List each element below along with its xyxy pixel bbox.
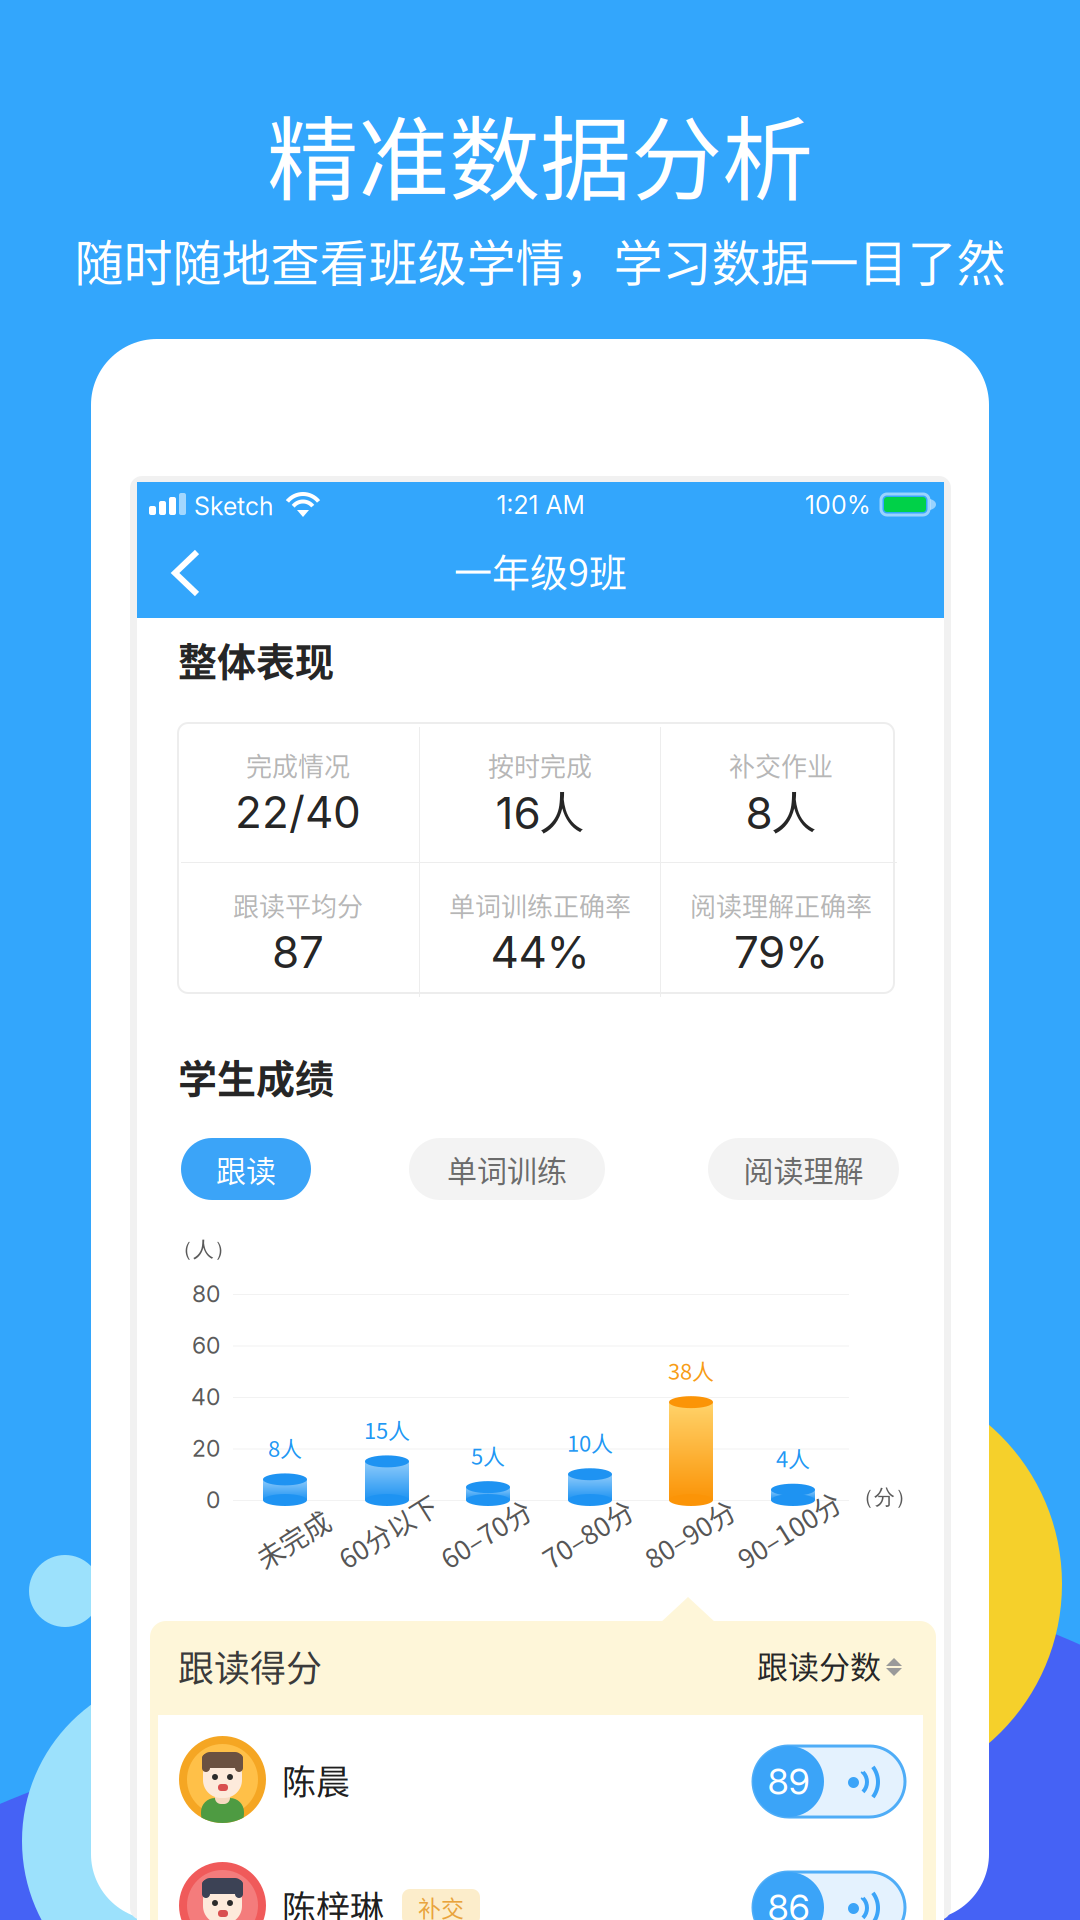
staticText: 80–90分: [657, 1538, 758, 1577]
button[interactable]: 跟读分数: [150, 1597, 381, 1645]
staticText: 按时完成: [488, 746, 592, 784]
staticText: 60分以下: [351, 1538, 462, 1577]
staticText: 0: [206, 1486, 220, 1514]
staticText: 跟读平均分: [233, 886, 363, 924]
staticText: 跟读: [216, 1147, 276, 1191]
staticText: 跟读得分: [178, 1640, 322, 1692]
staticText: 40: [191, 1383, 220, 1411]
staticText: 学生成绩: [178, 1048, 334, 1104]
staticText: 单词训练正确率: [449, 886, 631, 924]
staticText: 未完成: [269, 1538, 350, 1577]
staticText: 陈梓琳: [282, 1881, 384, 1920]
staticText: 22/40: [235, 785, 361, 839]
staticText: 补交: [418, 1890, 464, 1920]
staticText: 87: [272, 925, 324, 979]
staticText: 38人: [668, 1354, 714, 1386]
staticText: 阅读理解: [743, 1147, 863, 1191]
staticText: 100%: [805, 490, 871, 520]
staticText: 15人: [364, 1413, 410, 1445]
staticText: 1:21 AM: [496, 490, 584, 520]
staticText: 80: [192, 1280, 220, 1308]
staticText: 8人: [745, 784, 816, 840]
staticText: 精准数据分析: [267, 87, 813, 219]
button[interactable]: 跟读: [181, 1138, 311, 1200]
staticText: 完成情况: [246, 746, 350, 784]
staticText: 补交作业: [729, 746, 833, 784]
staticText: 20: [192, 1435, 220, 1462]
staticText: （分）: [853, 1484, 916, 1510]
button[interactable]: Back: [137, 528, 213, 594]
staticText: 89: [767, 1760, 809, 1803]
staticText: （人）: [172, 1236, 235, 1262]
staticText: Sketch: [194, 491, 273, 521]
staticText: 随时随地查看班级学情，学习数据一目了然: [74, 224, 1005, 295]
staticText: 90–100分: [750, 1538, 866, 1577]
staticText: 跟读分数: [757, 1643, 881, 1687]
staticText: 阅读理解正确率: [690, 886, 872, 924]
staticText: 5人: [471, 1439, 505, 1471]
staticText: 10人: [567, 1426, 613, 1458]
staticText: 单词训练: [447, 1147, 567, 1191]
staticText: 陈晨: [282, 1755, 350, 1804]
button[interactable]: 陈梓琳: [150, 1597, 915, 1723]
staticText: 4人: [776, 1442, 810, 1474]
staticText: 16人: [495, 784, 584, 840]
staticText: 79%: [734, 925, 828, 979]
staticText: 60–70分: [453, 1538, 554, 1577]
staticText: 8人: [268, 1431, 302, 1463]
staticText: 一年级9班: [454, 542, 627, 597]
staticText: 60: [192, 1332, 220, 1359]
staticText: 整体表现: [178, 631, 334, 687]
button[interactable]: 单词训练: [181, 1138, 377, 1200]
button[interactable]: 陈晨: [150, 1597, 915, 1723]
button[interactable]: 阅读理解: [181, 1138, 372, 1200]
staticText: 44%: [490, 925, 589, 979]
staticText: 86: [767, 1886, 809, 1920]
staticText: 70–80分: [555, 1538, 656, 1577]
